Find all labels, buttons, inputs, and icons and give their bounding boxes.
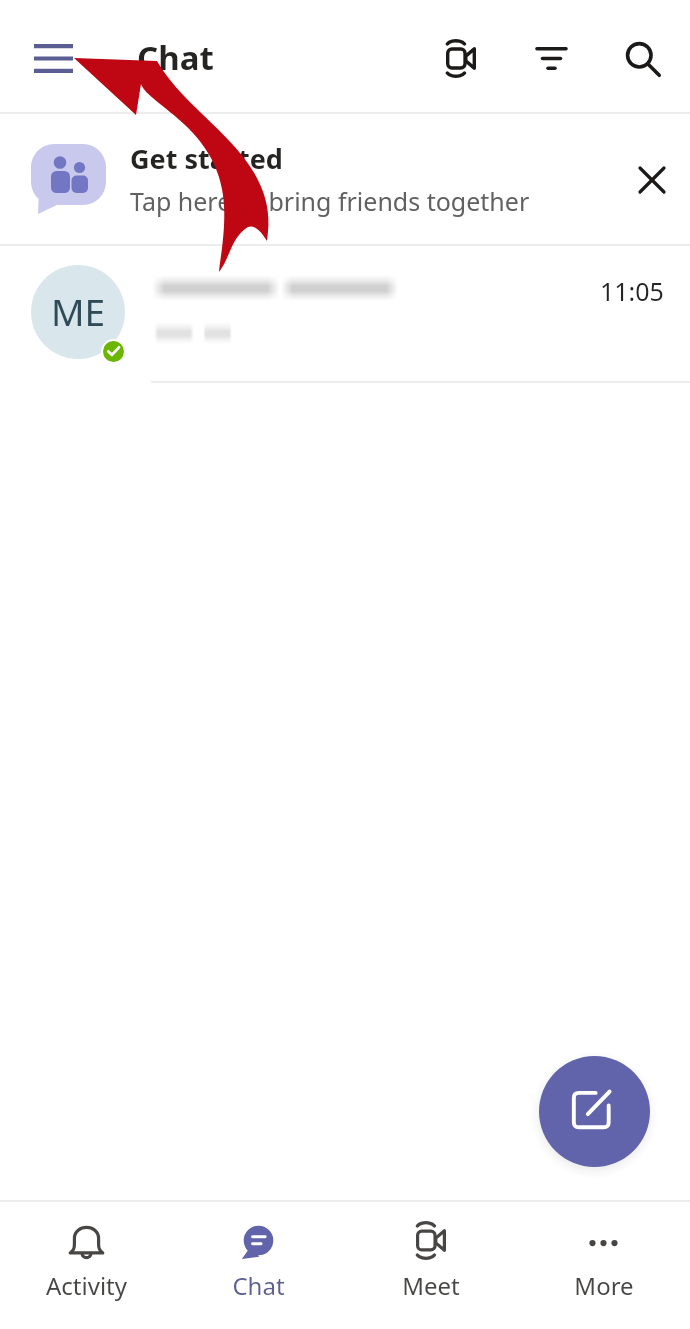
- button[interactable]: Filter: [513, 20, 589, 96]
- staticText: Chat: [137, 35, 214, 80]
- staticText: ME: [51, 286, 106, 336]
- staticText: Meet: [402, 1269, 460, 1302]
- button[interactable]: Get started: [0, 114, 690, 244]
- button[interactable]: ME: [0, 246, 690, 383]
- button[interactable]: More: [517, 1221, 690, 1302]
- button[interactable]: Meet: [344, 1221, 517, 1302]
- button[interactable]: Menu: [15, 20, 91, 96]
- button[interactable]: Video call: [423, 20, 499, 96]
- staticText: Get started: [130, 140, 283, 177]
- staticText: Tap here to bring friends together: [130, 184, 530, 218]
- button[interactable]: Dismiss: [619, 147, 685, 213]
- button[interactable]: Chat: [172, 1221, 344, 1302]
- button[interactable]: Search: [605, 21, 681, 97]
- staticText: Activity: [46, 1269, 127, 1302]
- staticText: 11:05: [600, 274, 664, 308]
- staticText: More: [574, 1269, 634, 1302]
- staticText: Chat: [232, 1269, 285, 1302]
- button[interactable]: Activity: [0, 1221, 172, 1302]
- button[interactable]: New chat: [539, 1056, 650, 1167]
